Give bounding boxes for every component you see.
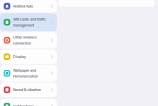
staticText: SIM cards and traffic management [13,17,46,27]
button[interactable]: Android Auto [0,0,57,12]
button[interactable]: Notifications [0,99,57,106]
staticText: Display [13,54,26,59]
button[interactable]: Wallpaper and Personalization [0,65,57,82]
button[interactable]: Sound & vibration [0,83,57,97]
staticText: Sound & vibration [13,88,41,92]
button[interactable]: Display [0,49,57,64]
button[interactable]: SIM cards and traffic management [0,13,57,31]
staticText: Wallpaper and Personalization [13,68,38,78]
staticText: Other wireless connection [13,35,37,45]
staticText: Notifications [13,104,34,106]
staticText: Android Auto [13,4,33,8]
button[interactable]: Other wireless connection [0,32,57,49]
